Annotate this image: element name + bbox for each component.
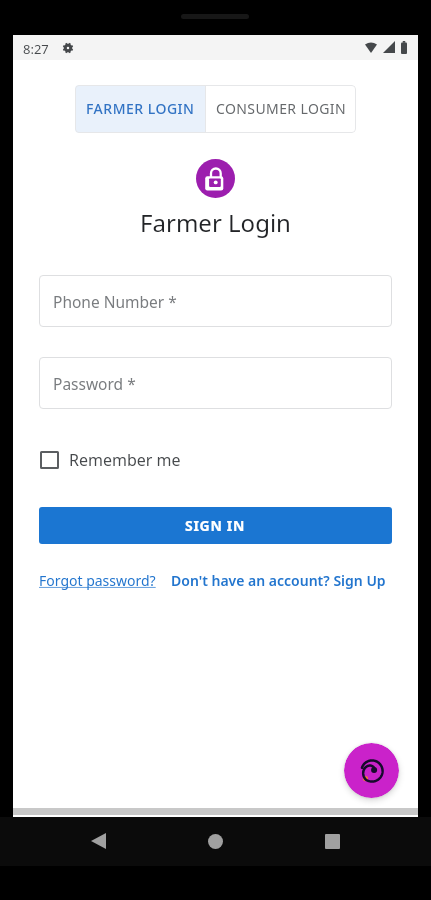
staticText: FARMER LOGIN xyxy=(86,99,195,118)
button[interactable]: Phone Number * xyxy=(39,275,392,327)
button[interactable]: CONSUMER LOGIN xyxy=(206,85,356,133)
staticText: CONSUMER LOGIN xyxy=(216,99,347,118)
button[interactable]: Recent apps xyxy=(317,826,347,856)
staticText: Password * xyxy=(53,373,136,394)
staticText: Phone Number * xyxy=(53,291,177,312)
staticText: 8:27 xyxy=(23,40,49,58)
button[interactable]: FARMER LOGIN xyxy=(75,85,205,133)
staticText: SIGN IN xyxy=(185,516,246,535)
button[interactable]: Password * xyxy=(39,357,392,409)
button[interactable]: Don't have an account? Sign Up xyxy=(171,571,386,590)
staticText: Farmer Login xyxy=(13,206,418,239)
button[interactable]: Hot reload xyxy=(344,743,399,798)
staticText: Don't have an account? Sign Up xyxy=(171,571,386,590)
button[interactable]: Forgot password? xyxy=(39,571,156,590)
button[interactable]: Back xyxy=(83,826,113,856)
staticText: Remember me xyxy=(69,449,181,471)
button[interactable]: Home xyxy=(200,826,230,856)
button[interactable]: Remember me xyxy=(39,449,181,471)
button[interactable]: SIGN IN xyxy=(39,507,392,544)
staticText: Forgot password? xyxy=(39,571,156,590)
